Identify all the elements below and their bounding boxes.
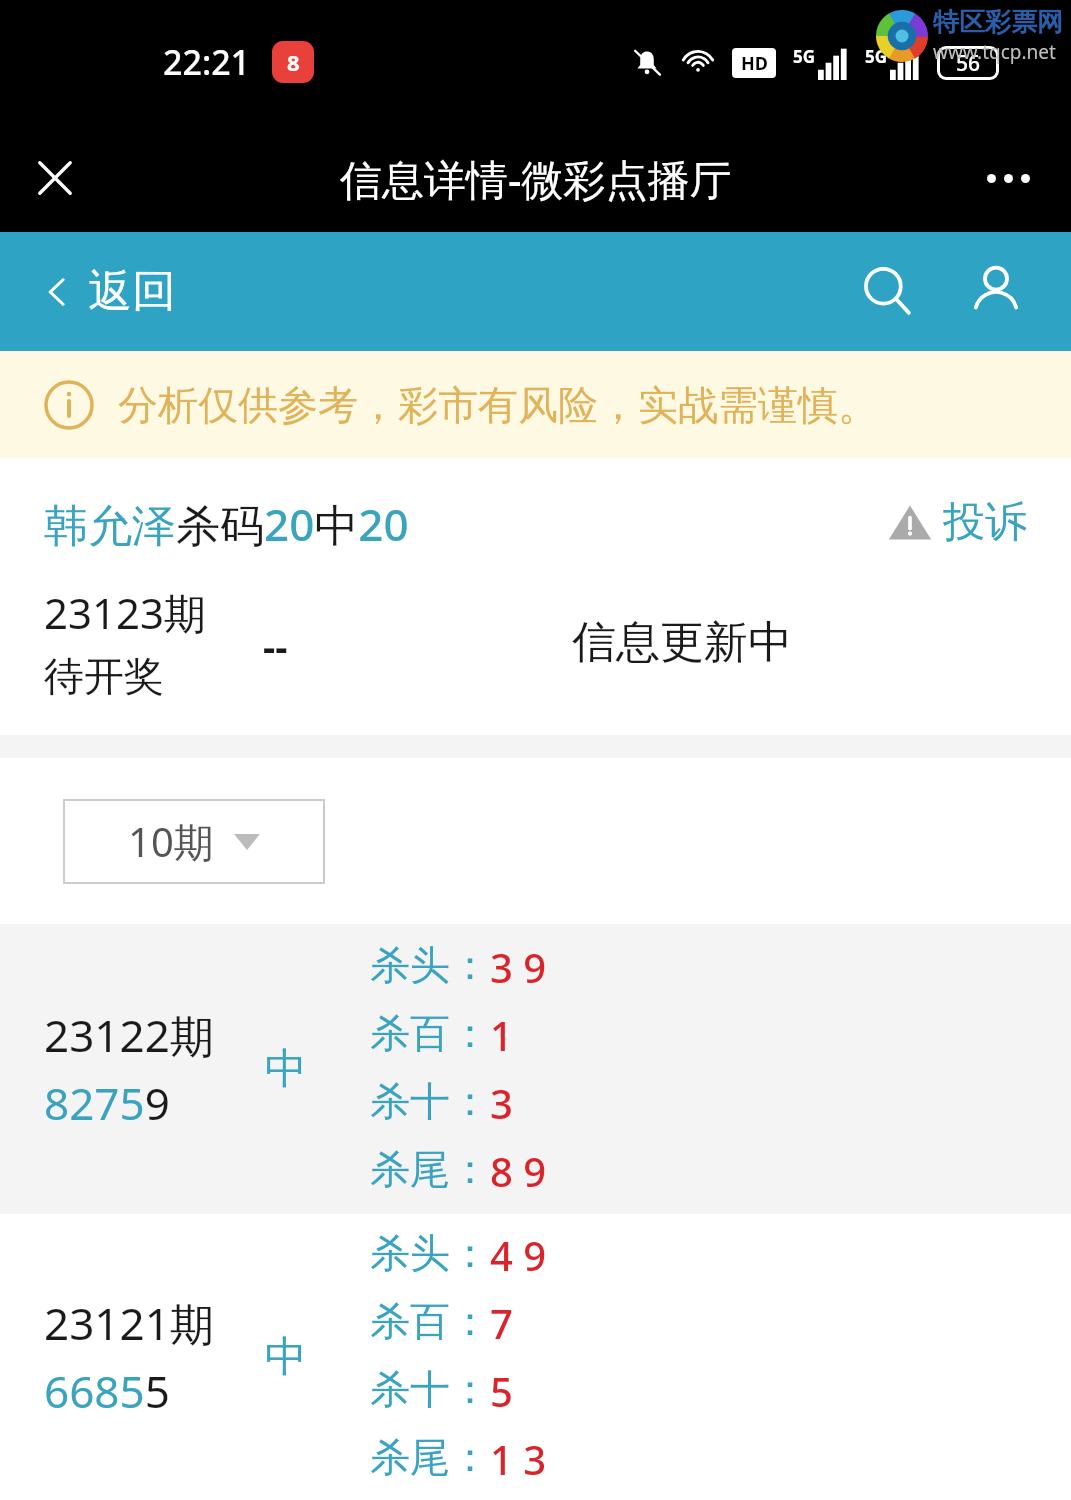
staticText: 1 (490, 1008, 513, 1062)
staticText: 10期 (128, 814, 214, 869)
staticText: 1 3 (490, 1432, 547, 1486)
staticText: HD (741, 51, 768, 76)
staticText: 3 (490, 1076, 513, 1130)
button[interactable]: Close (20, 143, 90, 213)
staticText: 23122期 (44, 1005, 214, 1065)
button[interactable]: 23121期 (0, 1214, 1071, 1500)
staticText: 4 9 (490, 1228, 547, 1282)
staticText: 韩允泽杀码20中20 (44, 494, 409, 554)
staticText: 23121期 (44, 1293, 214, 1353)
staticText: 投诉 (943, 496, 1027, 549)
staticText: 5G (865, 45, 888, 68)
staticText: 待开奖 (44, 651, 164, 701)
staticText: 杀十： (370, 1076, 490, 1126)
button[interactable]: 10期 (63, 799, 325, 884)
button[interactable]: 投诉 (887, 496, 1027, 549)
staticText: www.tqcp.net (933, 39, 1056, 65)
staticText: 56 (956, 49, 981, 78)
staticText: 22:21 (163, 39, 251, 85)
button[interactable]: Search (855, 259, 921, 325)
staticText: 杀百： (370, 1296, 490, 1346)
button[interactable]: 返回 (40, 264, 176, 319)
staticText: 信息详情-微彩点播厅 (340, 150, 732, 207)
staticText: 返回 (88, 264, 176, 319)
staticText: 23123期 (44, 584, 207, 641)
staticText: 5 (490, 1364, 513, 1418)
button[interactable]: Profile (963, 259, 1029, 325)
button[interactable]: 23122期 (0, 924, 1071, 1214)
staticText: 8 (287, 47, 300, 77)
staticText: 中 (265, 1331, 307, 1384)
staticText: 8 9 (490, 1144, 547, 1198)
staticText: 杀尾： (370, 1144, 490, 1194)
staticText: 3 9 (490, 940, 547, 994)
staticText: 杀百： (370, 1008, 490, 1058)
staticText: 信息更新中 (572, 615, 792, 670)
staticText: 杀头： (370, 940, 490, 990)
staticText: 杀十： (370, 1364, 490, 1414)
staticText: 82759 (44, 1073, 170, 1133)
staticText: 中 (265, 1043, 307, 1096)
staticText: 7 (490, 1296, 513, 1350)
staticText: 66855 (44, 1361, 170, 1421)
button[interactable]: More options (970, 140, 1046, 216)
staticText: 5G (793, 45, 816, 68)
staticText: 杀尾： (370, 1432, 490, 1482)
staticText: 分析仅供参考，彩市有风险，实战需谨慎。 (118, 380, 878, 430)
staticText: 特区彩票网 (933, 6, 1063, 39)
staticText: -- (263, 620, 288, 672)
staticText: 杀头： (370, 1228, 490, 1278)
